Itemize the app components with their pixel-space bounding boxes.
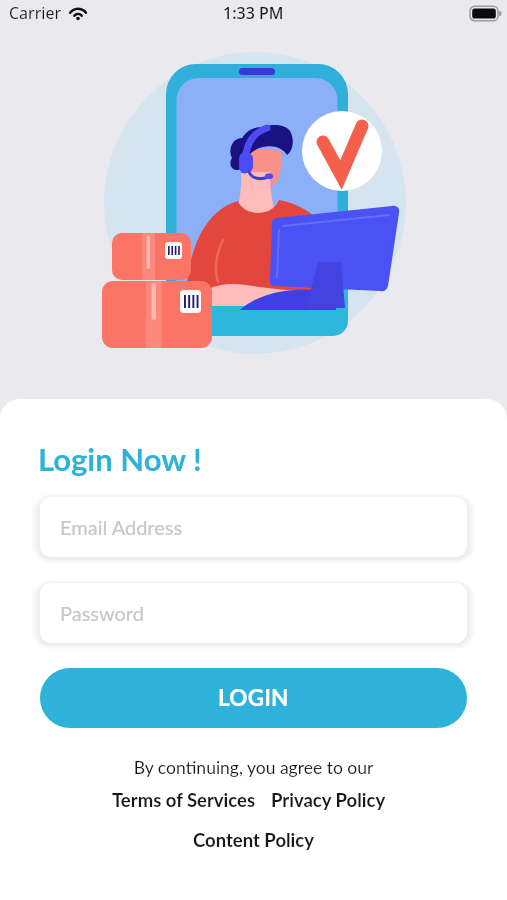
staticText: Password	[60, 601, 144, 625]
staticText: Carrier	[9, 2, 62, 24]
button[interactable]: Terms of Services	[112, 789, 256, 811]
other: Battery full	[470, 6, 501, 21]
button[interactable]: Password	[40, 583, 467, 643]
staticText: By continuing, you agree to our	[0, 757, 507, 778]
staticText: 1:33 PM	[223, 2, 284, 24]
staticText: Email Address	[60, 515, 183, 539]
button[interactable]: LOGIN	[40, 668, 467, 728]
button[interactable]: Email Address	[40, 497, 467, 557]
button[interactable]: Content Policy	[0, 829, 507, 851]
other: Wi-Fi signal	[68, 6, 88, 20]
staticText: Login Now !	[38, 440, 202, 477]
staticText: LOGIN	[218, 684, 289, 711]
button[interactable]: Privacy Policy	[271, 789, 386, 811]
